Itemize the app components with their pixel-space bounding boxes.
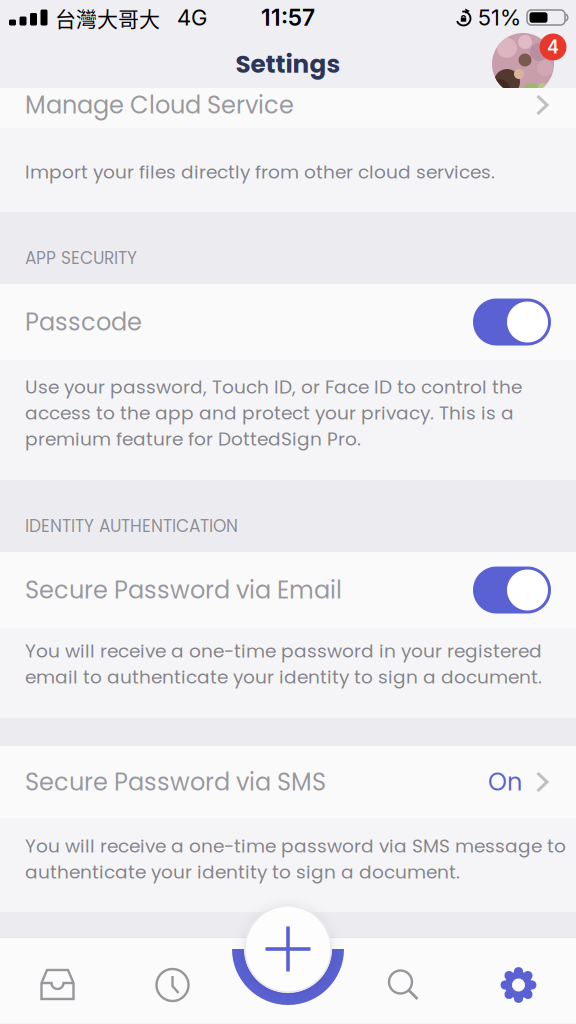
button[interactable]: Search — [346, 945, 461, 1024]
button[interactable]: Profile — [492, 33, 554, 95]
staticText: Secure Password via SMS — [25, 765, 326, 799]
button[interactable]: History — [115, 945, 230, 1024]
staticText: Import your files directly from other cl… — [25, 159, 495, 185]
button[interactable]: Secure Password via Email — [0, 552, 576, 628]
staticText: On — [488, 765, 522, 799]
staticText: You will receive a one-time password via… — [25, 833, 566, 885]
staticText: You will receive a one-time password in … — [25, 638, 542, 690]
staticText: 51% — [478, 4, 521, 31]
button[interactable]: Passcode — [0, 284, 576, 360]
button[interactable]: Secure Password via SMS — [0, 746, 576, 818]
staticText: 4G — [177, 4, 207, 31]
staticText: 4 — [547, 36, 559, 58]
staticText: 11:57 — [261, 4, 315, 31]
staticText: 台灣大哥大 — [55, 2, 160, 33]
button[interactable]: Manage Cloud Service — [0, 88, 576, 128]
button[interactable]: Add document — [0, 0, 576, 1024]
staticText: Manage Cloud Service — [25, 88, 294, 122]
staticText: Settings — [235, 47, 340, 81]
staticText: Passcode — [25, 305, 142, 339]
button[interactable]: Settings — [461, 945, 576, 1024]
staticText: IDENTITY AUTHENTICATION — [25, 514, 238, 538]
staticText: Secure Password via Email — [25, 573, 342, 607]
staticText: APP SECURITY — [25, 246, 137, 270]
button[interactable]: Documents — [0, 945, 115, 1024]
staticText: Use your password, Touch ID, or Face ID … — [25, 374, 522, 452]
